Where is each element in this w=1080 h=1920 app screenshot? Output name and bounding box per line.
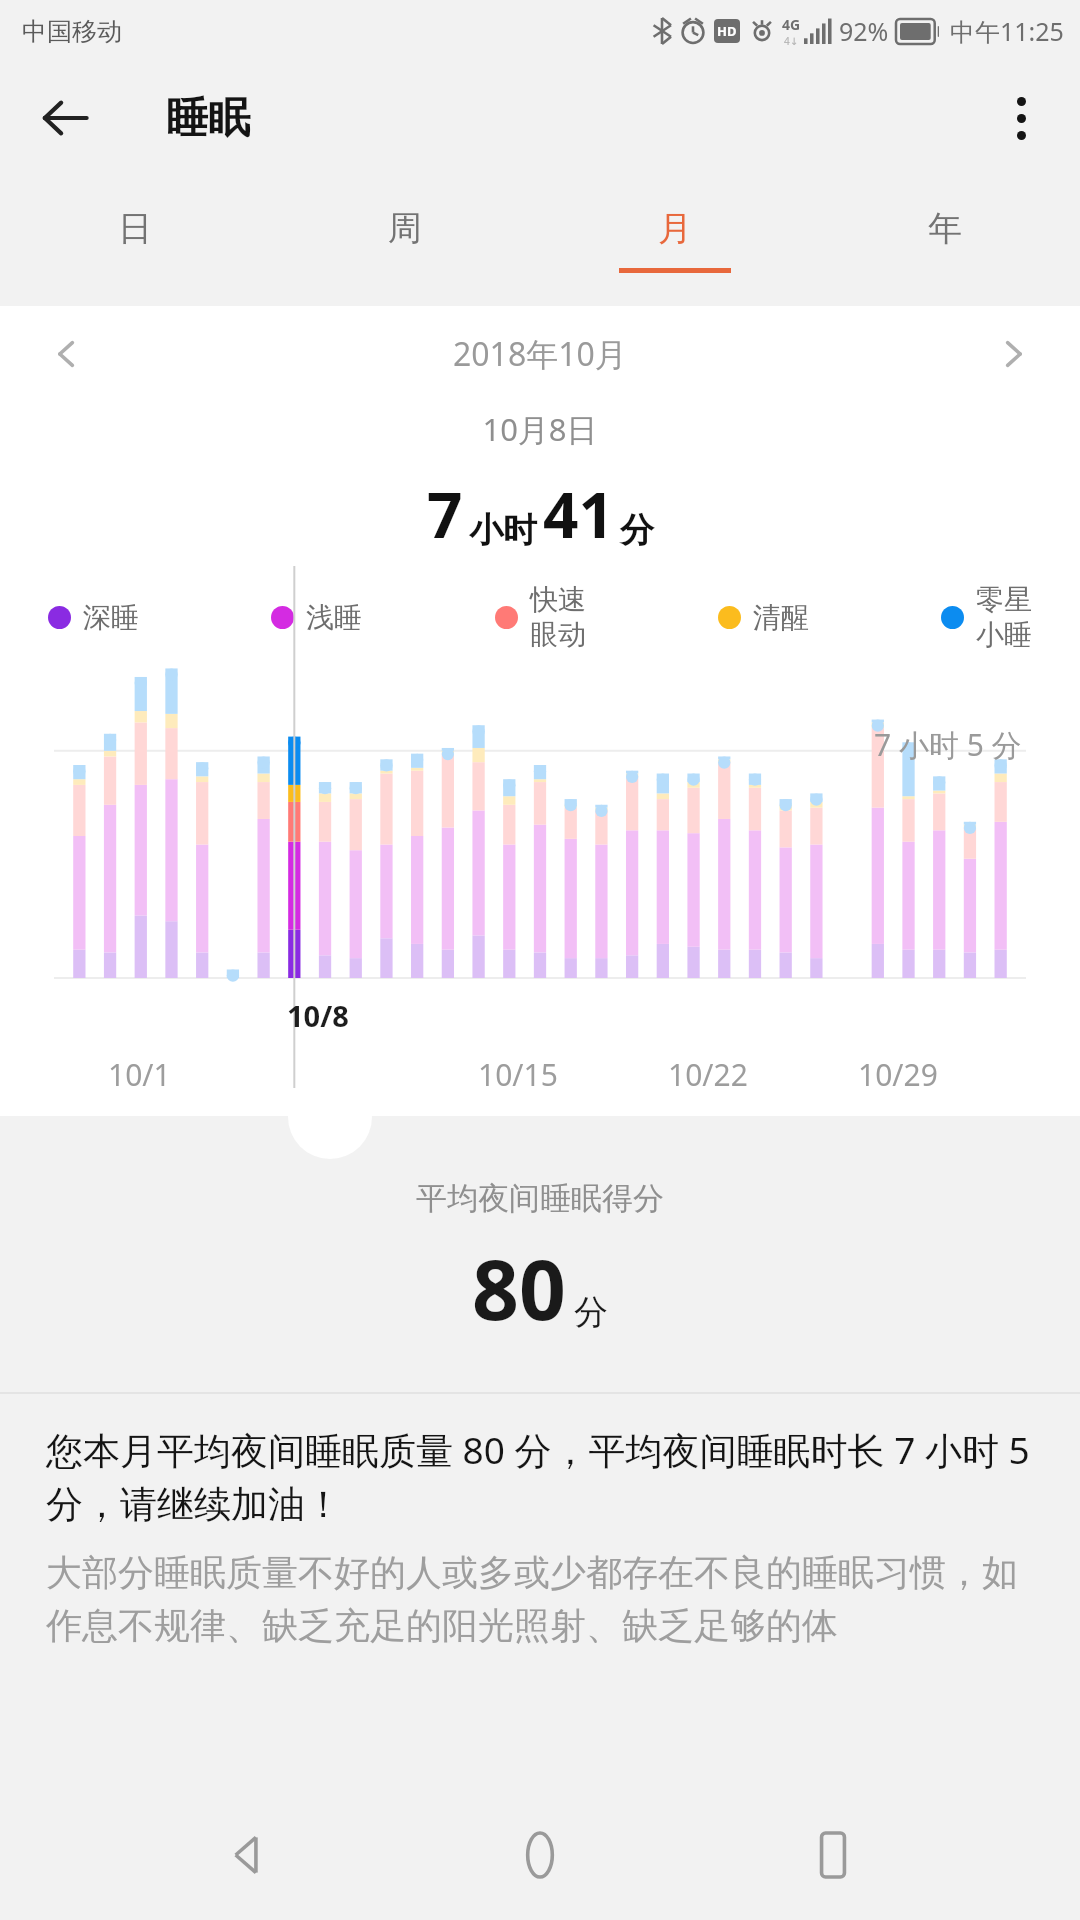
staticText: 4↓ [784, 34, 799, 48]
staticText: HD [717, 22, 737, 40]
button[interactable]: 年 [810, 174, 1080, 306]
staticText: 清醒 [753, 600, 809, 635]
button[interactable]: 月 [540, 174, 810, 306]
staticText: 年 [928, 207, 962, 250]
staticText: 月 [658, 207, 692, 250]
staticText: 浅睡 [306, 600, 362, 635]
staticText: 周 [388, 207, 422, 250]
staticText: 4G [782, 15, 801, 34]
staticText: 92% [839, 14, 889, 48]
staticText: 日 [118, 207, 152, 250]
staticText: 小时 [469, 509, 537, 552]
staticText: 10月8日 [0, 408, 1080, 450]
button[interactable]: More options [990, 87, 1052, 149]
staticText: 10/29 [858, 1054, 938, 1095]
staticText: 中国移动 [22, 16, 122, 47]
staticText: 10/22 [668, 1054, 748, 1095]
staticText: 小睡 [976, 617, 1032, 652]
staticText: 2018年10月 [453, 332, 627, 376]
staticText: 快速 [530, 582, 586, 617]
staticText: 平均夜间睡眠得分 [0, 1179, 1080, 1218]
staticText: 中午11:25 [950, 14, 1064, 48]
staticText: 10/1 [108, 1054, 171, 1095]
button[interactable]: Home [495, 1810, 585, 1900]
staticText: 您本月平均夜间睡眠质量 80 分，平均夜间睡眠时长 7 小时 5 分，请继续加油… [46, 1424, 1034, 1528]
staticText: 零星 [976, 582, 1032, 617]
button[interactable]: 日 [0, 174, 270, 306]
staticText: 大部分睡眠质量不好的人或多或少都存在不良的睡眠习惯，如作息不规律、缺乏充足的阳光… [46, 1550, 1034, 1648]
staticText: 深睡 [83, 600, 139, 635]
staticText: 分 [574, 1291, 608, 1334]
button[interactable]: Recents [788, 1810, 878, 1900]
staticText: 80 [472, 1232, 566, 1344]
button[interactable]: 周 [270, 174, 540, 306]
staticText: 分 [620, 509, 654, 552]
button[interactable]: Back [203, 1810, 293, 1900]
button[interactable]: Back [34, 87, 96, 149]
staticText: 睡眠 [166, 92, 250, 145]
staticText: 7 [427, 472, 463, 556]
button[interactable]: Date slider [288, 1075, 372, 1159]
button[interactable]: Next month [984, 325, 1042, 383]
button[interactable]: Previous month [38, 325, 96, 383]
staticText: 眼动 [530, 617, 586, 652]
staticText: 7 小时 5 分 [874, 724, 1022, 765]
staticText: 41 [543, 472, 614, 556]
staticText: 10/15 [478, 1054, 558, 1095]
staticText: 10/8 [287, 996, 349, 1035]
